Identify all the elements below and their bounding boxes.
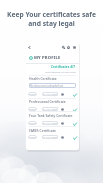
- button[interactable]: 01 / 01 / 2020: [42, 135, 58, 139]
- button[interactable]: UPLOAD: [28, 135, 37, 139]
- staticText: 01 / 01 / 2020: [43, 136, 57, 139]
- staticText: 01 / 01 / 2020: [43, 108, 57, 111]
- button[interactable]: UPLOAD: [28, 107, 37, 111]
- staticText: UPLOAD: [28, 93, 37, 96]
- button[interactable]: Verified: [72, 92, 77, 97]
- button[interactable]: Verified: [72, 135, 77, 140]
- button[interactable]: Attach: [60, 107, 64, 111]
- staticText: FARES Certificate: [29, 128, 56, 133]
- staticText: Last updated 24 May 2020: [45, 70, 76, 73]
- button[interactable]: UPLOAD: [28, 92, 37, 96]
- button[interactable]: Verified: [72, 121, 77, 126]
- button[interactable]: 01 / 01 / 2020: [42, 92, 58, 96]
- button[interactable]: Notifications: [65, 44, 71, 50]
- staticText: 01 / 01 / 2020: [43, 93, 57, 96]
- button[interactable]: Back: [26, 44, 32, 50]
- button[interactable]: Search: [60, 44, 66, 50]
- staticText: UPLOAD: [28, 136, 37, 139]
- staticText: MY PROFILE: [34, 55, 61, 61]
- button[interactable]: Verified: [72, 107, 77, 112]
- staticText: UPLOAD: [28, 108, 37, 111]
- staticText: Keep Your certificates safe: [7, 10, 96, 19]
- button[interactable]: Attach: [60, 135, 64, 139]
- staticText: and stay legal: [28, 19, 75, 28]
- staticText: 01 / 01 / 2020: [43, 122, 57, 125]
- button[interactable]: Attach: [60, 121, 64, 125]
- staticText: Health Certificate: [29, 76, 57, 81]
- button[interactable]: MY PROFILE: [29, 54, 61, 61]
- button[interactable]: Attach: [60, 92, 64, 96]
- staticText: Certificates 4/7: [51, 65, 76, 69]
- button[interactable]: 01 / 01 / 2020: [42, 121, 58, 125]
- staticText: Four Tank Safety Certificate: [29, 113, 73, 118]
- staticText: No document uploaded yet: [30, 84, 64, 88]
- staticText: UPLOAD: [28, 122, 37, 125]
- staticText: Professional Certificate: [29, 99, 66, 104]
- button[interactable]: UPLOAD: [28, 121, 37, 125]
- button[interactable]: 01 / 01 / 2020: [42, 107, 58, 111]
- button[interactable]: Menu: [71, 44, 77, 50]
- button[interactable]: No document uploaded yet: [29, 83, 76, 88]
